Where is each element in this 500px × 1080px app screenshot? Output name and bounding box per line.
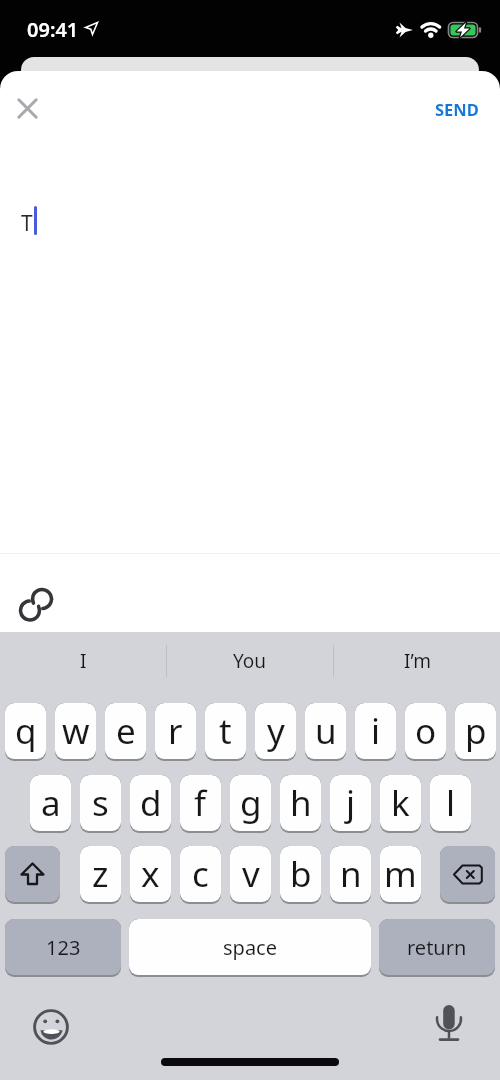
staticText: g (240, 779, 262, 827)
button[interactable]: g (230, 775, 271, 833)
button[interactable]: return (379, 919, 495, 977)
staticText: y (267, 707, 285, 755)
button[interactable]: l (430, 775, 471, 833)
staticText: c (192, 850, 209, 898)
button[interactable]: t (205, 703, 246, 761)
button[interactable]: b (280, 846, 321, 904)
staticText: 123 (46, 934, 81, 961)
button[interactable] (440, 846, 495, 904)
staticText: f (194, 779, 207, 827)
button[interactable] (23, 998, 79, 1054)
button[interactable]: s (80, 775, 121, 833)
staticText: a (41, 779, 61, 827)
button[interactable]: I’m (334, 632, 500, 690)
staticText: s (92, 779, 109, 827)
staticText: return (407, 934, 467, 961)
button[interactable]: c (180, 846, 221, 904)
button[interactable]: i (355, 703, 396, 761)
button[interactable] (10, 579, 62, 631)
staticText: n (340, 850, 362, 898)
staticText: I’m (404, 648, 431, 674)
staticText: t (219, 707, 232, 755)
button[interactable]: d (130, 775, 171, 833)
staticText: v (242, 850, 260, 898)
button[interactable]: u (305, 703, 346, 761)
button[interactable]: h (280, 775, 321, 833)
staticText: b (290, 850, 312, 898)
staticText: m (384, 850, 417, 898)
staticText: i (371, 707, 381, 755)
button[interactable]: y (255, 703, 296, 761)
staticText: z (92, 850, 109, 898)
button[interactable]: p (455, 703, 496, 761)
button[interactable]: m (380, 846, 421, 904)
button[interactable] (8, 89, 46, 127)
staticText: You (233, 648, 267, 674)
button[interactable]: r (155, 703, 196, 761)
button[interactable]: q (5, 703, 46, 761)
button[interactable]: v (230, 846, 271, 904)
button[interactable]: You (167, 632, 333, 690)
button[interactable]: e (105, 703, 146, 761)
staticText: p (465, 707, 487, 755)
button[interactable]: x (130, 846, 171, 904)
staticText: x (141, 850, 160, 898)
staticText: l (446, 779, 456, 827)
staticText: h (290, 779, 312, 827)
staticText: u (315, 707, 337, 755)
button[interactable]: 123 (5, 919, 121, 977)
button[interactable] (5, 846, 60, 904)
button[interactable]: j (330, 775, 371, 833)
button[interactable] (426, 996, 472, 1042)
staticText: k (391, 779, 410, 827)
staticText: o (415, 707, 437, 755)
button[interactable]: f (180, 775, 221, 833)
button[interactable]: a (30, 775, 71, 833)
staticText: SEND (435, 98, 479, 120)
staticText: q (15, 707, 37, 755)
staticText: 09:41 (27, 16, 79, 43)
button[interactable]: space (129, 919, 371, 977)
staticText: r (168, 707, 183, 755)
button[interactable]: SEND (435, 98, 479, 120)
staticText: T (21, 209, 33, 238)
button[interactable]: w (55, 703, 96, 761)
staticText: d (140, 779, 162, 827)
staticText: w (62, 707, 90, 755)
button[interactable]: k (380, 775, 421, 833)
staticText: I (80, 648, 87, 674)
button[interactable]: o (405, 703, 446, 761)
staticText: e (116, 707, 136, 755)
button[interactable]: I (0, 632, 166, 690)
button[interactable]: z (80, 846, 121, 904)
staticText: space (223, 934, 277, 961)
button[interactable]: n (330, 846, 371, 904)
staticText: j (346, 779, 356, 827)
